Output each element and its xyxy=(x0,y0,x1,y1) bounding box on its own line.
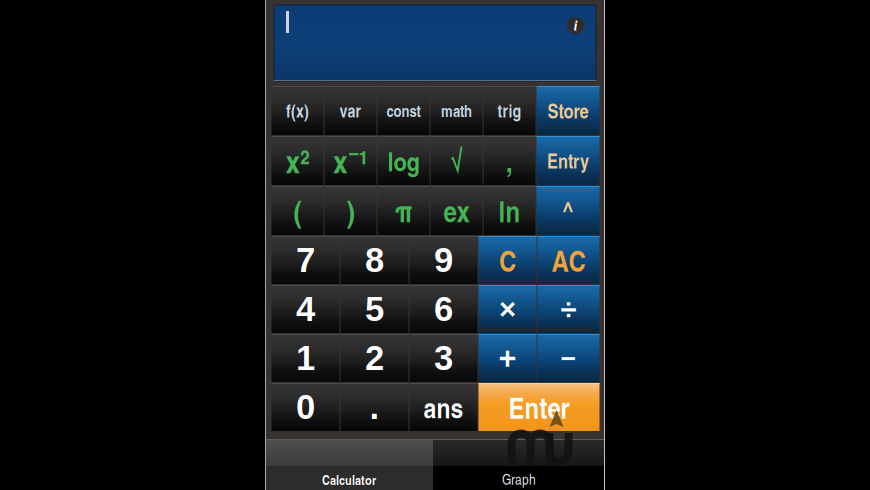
staticText: − xyxy=(560,343,576,373)
staticText: i xyxy=(573,17,577,34)
staticText: ln xyxy=(498,190,520,231)
staticText: x² xyxy=(285,138,309,183)
button[interactable]: , xyxy=(483,136,535,185)
button[interactable]: ans xyxy=(409,383,477,431)
staticText: trig xyxy=(497,98,521,123)
button[interactable]: Enter xyxy=(478,383,599,431)
button[interactable]: . xyxy=(340,383,408,431)
button[interactable]: AC xyxy=(537,236,599,284)
staticText: ex xyxy=(443,190,469,231)
button[interactable]: Graph xyxy=(433,439,605,490)
button[interactable]: ex xyxy=(430,186,482,235)
button[interactable]: log xyxy=(377,136,429,185)
staticText: π xyxy=(394,190,412,231)
button[interactable]: var xyxy=(324,86,376,135)
button[interactable]: Info xyxy=(567,10,584,34)
button[interactable]: 8 xyxy=(340,236,408,284)
staticText: ^ xyxy=(561,192,574,229)
staticText: var xyxy=(339,98,361,123)
staticText: 7 xyxy=(296,241,315,279)
staticText: ans xyxy=(423,387,463,427)
button[interactable]: − xyxy=(537,334,599,382)
staticText: Store xyxy=(547,96,588,125)
button[interactable]: Store xyxy=(536,86,599,135)
staticText: ) xyxy=(346,189,354,232)
staticText: f(x) xyxy=(286,98,309,123)
staticText: , xyxy=(506,140,513,181)
button[interactable]: 3 xyxy=(409,334,477,382)
staticText: × xyxy=(499,293,516,325)
staticText: const xyxy=(386,99,420,122)
staticText: ÷ xyxy=(560,293,576,325)
button[interactable]: 0 xyxy=(271,383,339,431)
button[interactable]: ( xyxy=(271,186,323,235)
staticText: 4 xyxy=(296,290,315,328)
button[interactable]: const xyxy=(377,86,429,135)
staticText: x⁻¹ xyxy=(333,138,368,183)
staticText: . xyxy=(369,388,379,426)
staticText: AC xyxy=(551,239,585,281)
button[interactable]: 4 xyxy=(271,285,339,333)
button[interactable]: π xyxy=(377,186,429,235)
button[interactable]: + xyxy=(478,334,536,382)
button[interactable]: × xyxy=(478,285,536,333)
staticText: log xyxy=(387,142,419,179)
staticText: Entry xyxy=(547,146,589,175)
button[interactable]: 2 xyxy=(340,334,408,382)
staticText: math xyxy=(441,99,472,122)
staticText: Enter xyxy=(508,386,569,428)
button[interactable]: 6 xyxy=(409,285,477,333)
staticText: 5 xyxy=(365,290,384,328)
button[interactable]: f(x) xyxy=(271,86,323,135)
staticText: Graph xyxy=(502,469,536,489)
button[interactable]: 1 xyxy=(271,334,339,382)
staticText: 1 xyxy=(296,339,315,377)
button[interactable]: x⁻¹ xyxy=(324,136,376,185)
staticText: √ xyxy=(450,140,463,181)
staticText: ( xyxy=(293,189,301,232)
staticText: C xyxy=(499,239,516,281)
button[interactable]: Entry xyxy=(536,136,599,185)
button[interactable]: trig xyxy=(483,86,535,135)
button[interactable]: ÷ xyxy=(537,285,599,333)
staticText: 2 xyxy=(365,339,384,377)
button[interactable]: x² xyxy=(271,136,323,185)
staticText: 8 xyxy=(365,241,384,279)
staticText: Calculator xyxy=(322,470,376,489)
button[interactable]: 5 xyxy=(340,285,408,333)
button[interactable]: math xyxy=(430,86,482,135)
button[interactable]: √ xyxy=(430,136,482,185)
button[interactable]: 9 xyxy=(409,236,477,284)
button[interactable]: ln xyxy=(483,186,535,235)
staticText: 9 xyxy=(434,241,453,279)
button[interactable]: ) xyxy=(324,186,376,235)
button[interactable]: 7 xyxy=(271,236,339,284)
staticText: 6 xyxy=(434,290,453,328)
staticText: 0 xyxy=(296,388,315,426)
button[interactable]: C xyxy=(478,236,536,284)
button[interactable]: ^ xyxy=(536,186,599,235)
staticText: 3 xyxy=(434,339,453,377)
button[interactable]: Calculator xyxy=(265,439,433,490)
staticText: + xyxy=(498,341,516,375)
